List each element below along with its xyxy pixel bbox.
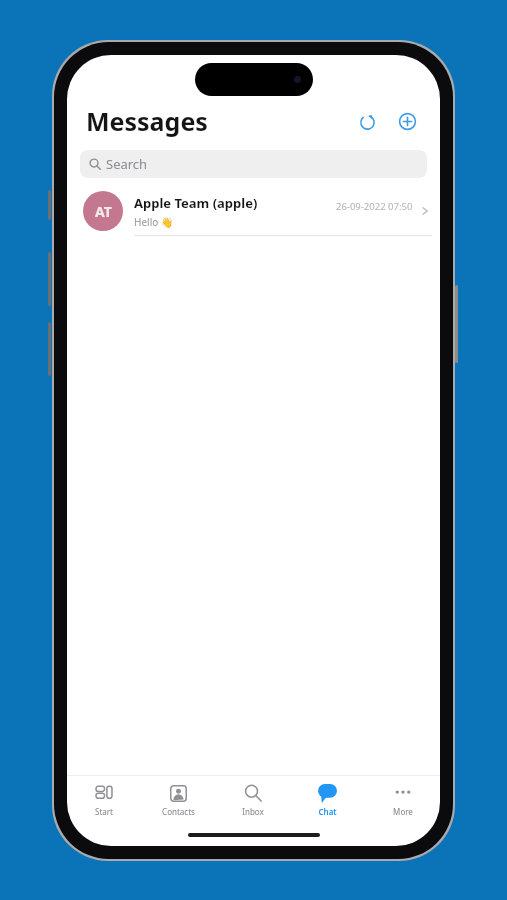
staticText: Apple Team (apple): [134, 194, 258, 212]
staticText: Start: [95, 806, 113, 817]
button[interactable]: Inbox: [215, 776, 290, 824]
button[interactable]: Search: [80, 150, 427, 178]
staticText: Hello 👋: [134, 215, 174, 229]
button[interactable]: Start: [67, 776, 141, 824]
button[interactable]: More: [365, 776, 440, 824]
button[interactable]: Chat: [290, 776, 365, 824]
staticText: AT: [95, 202, 112, 221]
staticText: Contacts: [162, 806, 195, 817]
button[interactable]: New message: [391, 105, 423, 137]
staticText: 26-09-2022 07:50: [336, 200, 413, 213]
button[interactable]: Refresh: [351, 105, 383, 137]
staticText: Search: [106, 155, 148, 173]
button[interactable]: Contacts: [141, 776, 215, 824]
button[interactable]: AT: [67, 187, 440, 235]
staticText: Messages: [86, 104, 208, 138]
staticText: Inbox: [242, 806, 264, 817]
staticText: Chat: [318, 806, 337, 817]
staticText: More: [393, 806, 413, 817]
